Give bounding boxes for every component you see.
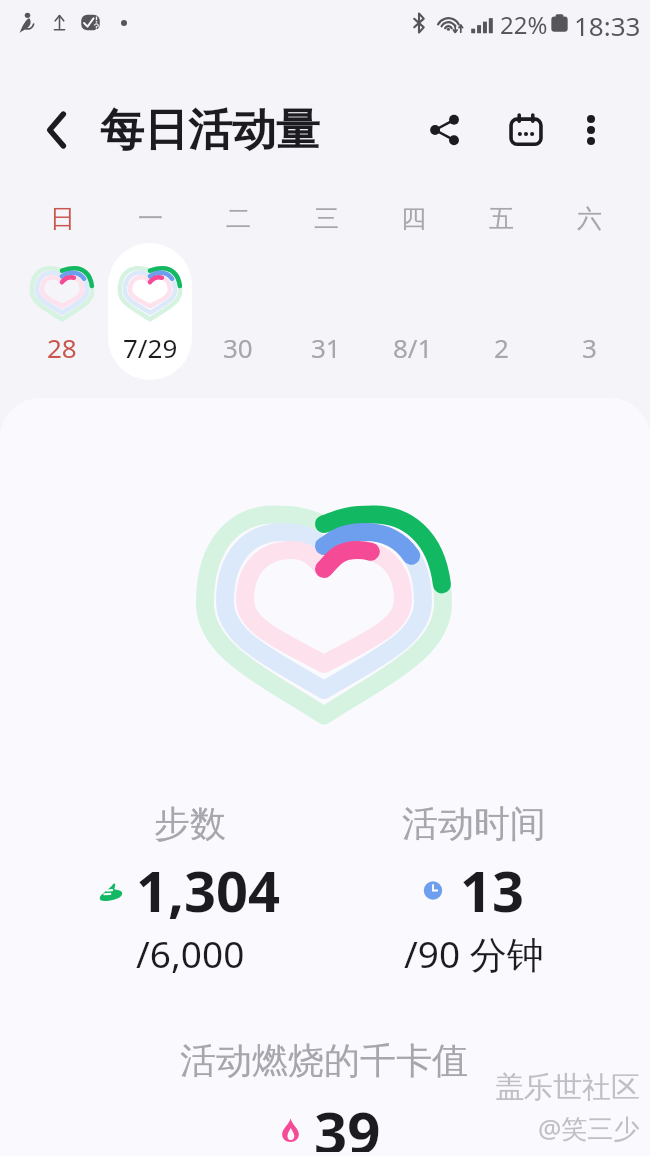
staticText: 30 <box>223 330 253 364</box>
staticText: 三 <box>314 203 339 234</box>
staticText: 活动燃烧的千卡值 <box>180 1038 468 1083</box>
button[interactable]: 三 <box>282 200 370 380</box>
button[interactable]: Share <box>413 98 477 162</box>
button[interactable]: 日 <box>18 200 106 380</box>
button[interactable]: 五 <box>457 200 545 380</box>
button[interactable]: 二 <box>194 200 282 380</box>
staticText: 六 <box>577 203 602 234</box>
staticText: 活动时间 <box>402 801 546 846</box>
staticText: 一 <box>138 203 163 234</box>
staticText: 18:33 <box>574 8 641 40</box>
staticText: 二 <box>226 203 251 234</box>
staticText: 31 <box>311 330 341 364</box>
staticText: 四 <box>401 203 426 234</box>
button[interactable]: 一 <box>106 200 194 380</box>
button[interactable]: More options <box>559 98 623 162</box>
staticText: /6,000 <box>136 928 245 978</box>
staticText: 3 <box>582 330 597 364</box>
staticText: 日 <box>50 203 75 234</box>
button[interactable]: 六 <box>545 200 633 380</box>
button[interactable]: 步数 <box>40 801 340 978</box>
staticText: 8/1 <box>393 330 433 364</box>
staticText: 1,304 <box>136 852 281 928</box>
button[interactable]: 四 <box>369 200 457 380</box>
staticText: 22% <box>500 8 548 40</box>
staticText: /90 分钟 <box>404 928 544 979</box>
button[interactable]: Calendar <box>494 98 558 162</box>
staticText: 每日活动量 <box>100 103 320 158</box>
staticText: 39 <box>314 1092 381 1152</box>
staticText: @笑三少 <box>538 1110 640 1146</box>
button[interactable]: Back <box>24 98 88 162</box>
button[interactable]: 活动时间 <box>324 801 624 979</box>
staticText: 7/29 <box>123 330 178 364</box>
staticText: 五 <box>489 203 514 234</box>
staticText: 28 <box>47 330 77 364</box>
staticText: 2 <box>494 330 509 364</box>
staticText: 盖乐世社区 <box>495 1069 640 1106</box>
staticText: 13 <box>460 852 525 928</box>
staticText: 步数 <box>154 801 226 846</box>
